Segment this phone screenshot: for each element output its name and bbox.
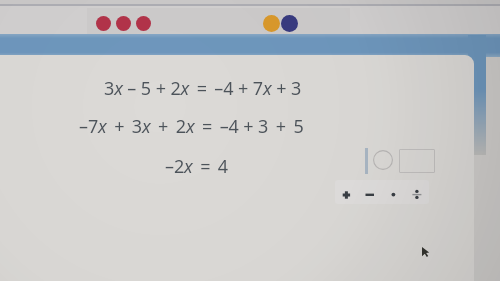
button[interactable]: Plus xyxy=(335,180,358,204)
button[interactable]: Multiply xyxy=(382,180,405,204)
staticText: 3x – 5 + 2x = –4 + 7x + 3 xyxy=(104,76,302,101)
staticText: –2x = 4 xyxy=(165,154,229,179)
button[interactable]: Divide xyxy=(406,180,429,204)
staticText: –7x + 3x + 2x = –4 + 3 + 5 xyxy=(79,114,304,139)
button[interactable]: Minus xyxy=(358,180,381,204)
